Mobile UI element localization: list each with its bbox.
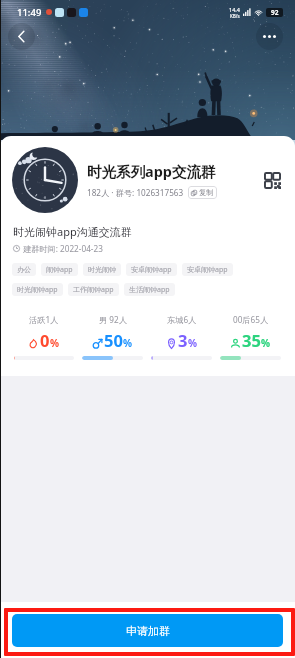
button[interactable]: 闹钟app: [41, 263, 78, 276]
staticText: 时光闹钟: [88, 265, 116, 274]
staticText: 时光闹钟app沟通交流群: [13, 224, 132, 239]
staticText: %: [261, 336, 271, 350]
button[interactable]: 复制: [188, 186, 217, 199]
staticText: 东城6人: [167, 314, 197, 325]
button[interactable]: 时光闹钟: [83, 263, 121, 276]
staticText: 时光系列app交流群: [87, 161, 216, 181]
button[interactable]: 工作闹钟app: [68, 283, 119, 296]
staticText: 生活闹钟app: [129, 285, 170, 295]
button[interactable]: 00后65人: [216, 314, 285, 360]
staticText: 35: [242, 329, 261, 351]
staticText: 11:49: [17, 6, 42, 19]
staticText: %: [123, 336, 133, 350]
staticText: 安卓闹钟app: [131, 265, 172, 275]
staticText: 00后65人: [233, 314, 269, 325]
button[interactable]: 安卓闹钟app: [126, 263, 177, 276]
button[interactable]: 时光闹钟app: [12, 283, 63, 296]
staticText: 复制: [199, 188, 214, 197]
button[interactable]: 办公: [12, 263, 36, 276]
button[interactable]: Group QR code: [260, 168, 284, 192]
staticText: 3: [178, 329, 188, 351]
button[interactable]: Back: [8, 23, 35, 50]
staticText: 92: [271, 8, 279, 17]
button[interactable]: 生活闹钟app: [124, 283, 175, 296]
staticText: 安卓闹钟app: [187, 265, 228, 275]
staticText: 建群时间: 2022-04-23: [23, 243, 103, 254]
staticText: 活跃1人: [29, 314, 59, 325]
staticText: %: [188, 336, 198, 350]
staticText: %: [50, 336, 60, 350]
button[interactable]: 申请加群: [12, 614, 283, 647]
staticText: 男 92人: [99, 314, 127, 325]
staticText: 闹钟app: [46, 265, 73, 275]
button[interactable]: 安卓闹钟app: [182, 263, 233, 276]
staticText: 工作闹钟app: [73, 285, 114, 295]
button[interactable]: More options: [256, 23, 283, 50]
staticText: 时光闹钟app: [17, 285, 58, 295]
staticText: 50: [104, 329, 123, 351]
staticText: KB/s: [230, 13, 240, 19]
button[interactable]: 东城6人: [147, 314, 216, 360]
staticText: 0: [40, 329, 50, 351]
button[interactable]: 活跃1人: [10, 314, 78, 360]
staticText: 申请加群: [126, 624, 170, 638]
staticText: 182人 · 群号: 1026317563: [87, 187, 184, 198]
staticText: 14.4: [229, 6, 240, 13]
staticText: 办公: [17, 265, 31, 274]
button[interactable]: 男 92人: [78, 314, 147, 360]
